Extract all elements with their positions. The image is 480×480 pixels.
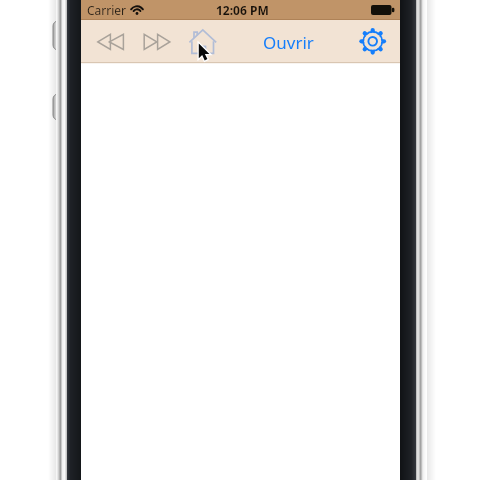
staticText: 12:06 PM (216, 2, 269, 18)
staticText: Ouvrir (263, 31, 314, 54)
button[interactable]: Ouvrir (258, 23, 318, 61)
button[interactable] (358, 26, 388, 56)
button[interactable] (187, 27, 218, 56)
staticText: Carrier (87, 2, 127, 18)
button[interactable] (140, 29, 174, 55)
button[interactable] (94, 29, 128, 55)
